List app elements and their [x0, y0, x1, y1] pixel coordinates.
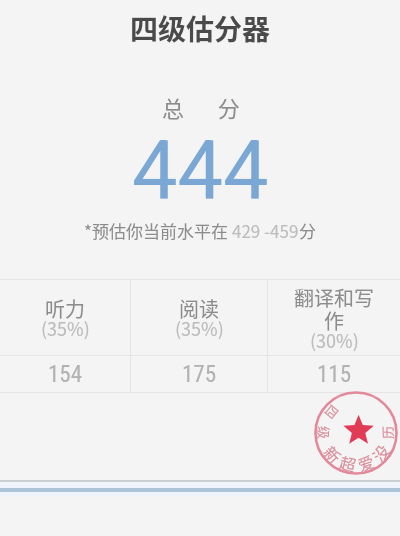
staticText: 翻译和写 作 — [294, 283, 374, 334]
staticText: *预估你当前水平在 — [84, 218, 232, 243]
staticText: 总 分 — [162, 91, 248, 123]
staticText: 175 — [182, 361, 217, 388]
staticText: 115 — [317, 361, 352, 388]
staticText: (30%) — [310, 327, 359, 353]
staticText: 429 -459 — [232, 218, 299, 243]
staticText: (35%) — [175, 315, 224, 341]
staticText: 阅读 — [179, 294, 219, 323]
staticText: 分 — [299, 218, 316, 243]
staticText: 154 — [48, 361, 83, 388]
staticText: 听力 — [45, 294, 85, 323]
staticText: 四级估分器 — [130, 8, 271, 48]
staticText: 444 — [132, 124, 269, 219]
staticText: (35%) — [41, 315, 90, 341]
